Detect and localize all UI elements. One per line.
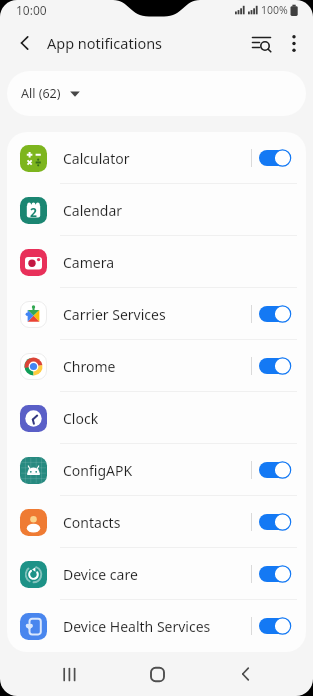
button[interactable]: Camera <box>7 236 306 288</box>
button[interactable] <box>259 357 292 375</box>
button[interactable] <box>11 29 39 57</box>
staticText: Device Health Services <box>63 617 211 636</box>
button[interactable]: All (62) <box>7 71 306 116</box>
button[interactable] <box>259 565 292 583</box>
button[interactable] <box>39 652 99 696</box>
button[interactable]: Calculator <box>7 132 306 184</box>
staticText: ConfigAPK <box>63 461 133 480</box>
button[interactable]: Device Health Services <box>7 600 306 652</box>
button[interactable] <box>243 25 279 61</box>
button[interactable] <box>259 617 292 635</box>
button[interactable] <box>259 513 292 531</box>
staticText: 2 <box>30 204 37 220</box>
staticText: Carrier Services <box>63 305 166 324</box>
button[interactable]: Contacts <box>7 496 306 548</box>
staticText: 100% <box>261 3 288 17</box>
staticText: Camera <box>63 253 115 272</box>
staticText: 10:00 <box>16 2 47 18</box>
button[interactable]: Device care <box>7 548 306 600</box>
button[interactable] <box>127 652 187 696</box>
button[interactable] <box>259 149 292 167</box>
button[interactable]: 2 <box>7 184 306 236</box>
staticText: Contacts <box>63 513 121 532</box>
staticText: Clock <box>63 409 99 428</box>
button[interactable] <box>259 305 292 323</box>
button[interactable] <box>215 652 275 696</box>
button[interactable] <box>279 28 309 58</box>
staticText: Calculator <box>63 149 130 168</box>
button[interactable]: Carrier Services <box>7 288 306 340</box>
button[interactable]: ConfigAPK <box>7 444 306 496</box>
staticText: Device care <box>63 565 138 584</box>
staticText: Calendar <box>63 201 123 220</box>
staticText: App notifications <box>47 33 163 53</box>
button[interactable] <box>259 461 292 479</box>
staticText: Chrome <box>63 357 116 376</box>
button[interactable]: Clock <box>7 392 306 444</box>
staticText: All (62) <box>21 85 61 102</box>
button[interactable]: Chrome <box>7 340 306 392</box>
